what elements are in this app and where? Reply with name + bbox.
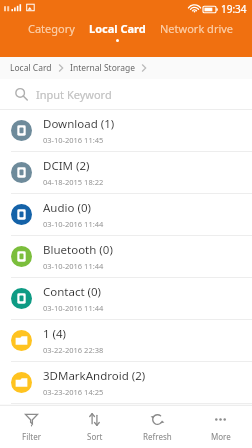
staticText: 1 (4): [43, 326, 67, 342]
button[interactable]: Internal Storage: [68, 59, 137, 77]
button[interactable]: Refresh: [126, 406, 189, 448]
button[interactable]: DCIM (2): [0, 152, 252, 194]
button[interactable]: Contact (0): [0, 278, 252, 320]
button[interactable]: Filter: [0, 406, 63, 448]
staticText: Category: [28, 21, 75, 36]
button[interactable]: 3DMarkAndroid (2): [0, 362, 252, 404]
button[interactable]: 1 (4): [0, 320, 252, 362]
button[interactable]: Local Card: [8, 59, 54, 77]
button[interactable]: Download (1): [0, 110, 252, 152]
staticText: Bluetooth (0): [43, 242, 113, 258]
staticText: Input Keyword: [36, 87, 112, 102]
staticText: 3DMarkAndroid (2): [43, 368, 146, 384]
button[interactable]: Network drive: [160, 17, 234, 46]
button[interactable]: Input Keyword: [0, 79, 252, 109]
button[interactable]: Audio (0): [0, 194, 252, 236]
staticText: 03-10-2016 11:44: [43, 303, 104, 313]
button[interactable]: Category: [28, 17, 75, 46]
staticText: Local Card: [89, 21, 146, 36]
staticText: Download (1): [43, 116, 115, 132]
staticText: 03-10-2016 11:45: [43, 135, 104, 145]
staticText: Network drive: [160, 21, 234, 36]
staticText: 03-23-2016 14:25: [43, 387, 104, 397]
staticText: 19:34: [221, 2, 247, 16]
staticText: Refresh: [143, 431, 172, 442]
staticText: Contact (0): [43, 284, 102, 300]
staticText: More: [211, 431, 231, 442]
staticText: Internal Storage: [70, 62, 135, 74]
staticText: 03-10-2016 11:44: [43, 219, 104, 229]
staticText: 04-18-2015 18:22: [43, 177, 104, 187]
staticText: Audio (0): [43, 200, 91, 216]
staticText: Sort: [87, 431, 103, 442]
button[interactable]: More: [189, 406, 252, 448]
button[interactable]: Local Card: [89, 17, 146, 46]
staticText: Local Card: [10, 62, 52, 74]
staticText: Filter: [22, 431, 41, 442]
staticText: DCIM (2): [43, 158, 90, 174]
staticText: 03-22-2016 22:38: [43, 345, 104, 355]
staticText: 03-10-2016 11:44: [43, 261, 104, 271]
button[interactable]: Sort: [63, 406, 126, 448]
button[interactable]: Bluetooth (0): [0, 236, 252, 278]
